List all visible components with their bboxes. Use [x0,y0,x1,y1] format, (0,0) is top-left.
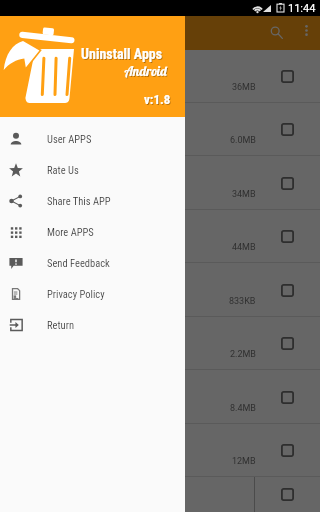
staticText: More APPS [47,226,94,238]
staticText: Uninstall Apps [82,47,164,63]
button[interactable]: User APPS [0,123,185,154]
button[interactable]: Calculator [0,50,320,103]
staticText: Return [47,319,74,331]
staticText: 36MB [232,82,256,93]
button[interactable]: Select app [275,438,299,462]
staticText: Calendar [54,122,102,136]
staticText: Chrome [54,229,97,243]
button[interactable]: Rate Us [0,154,185,185]
staticText: Android [126,64,169,80]
button[interactable]: Contacts [0,317,320,370]
staticText: 2.2MB [230,349,256,360]
button[interactable]: Privacy Policy [0,278,185,309]
button[interactable]: Calendar [0,103,320,156]
button[interactable]: Select app [275,278,299,302]
staticText: 833KB [229,296,256,307]
staticText: 44MB [232,242,256,253]
staticText: 12MB [232,456,256,467]
button[interactable]: Select app [275,117,299,141]
staticText: Share This APP [47,195,111,207]
staticText: Clock [54,283,84,297]
button[interactable]: More APPS [0,216,185,247]
button[interactable]: Chrome [0,210,320,263]
staticText: 34MB [232,189,256,200]
button[interactable]: Select app [275,224,299,248]
button[interactable]: Camera [0,157,320,210]
button[interactable]: Uninstall selected [0,477,254,512]
staticText: v:1.8 [145,93,172,108]
button[interactable]: Search [261,17,292,48]
staticText: 6.0MB [230,135,256,146]
staticText: Privacy Policy [47,288,105,300]
staticText: User APPS [47,133,92,145]
button[interactable]: More options [293,17,320,44]
button[interactable]: Share This APP [0,185,185,216]
staticText: 8.4MB [230,403,256,414]
button[interactable]: Return [0,309,185,340]
button[interactable]: Select app [275,171,299,195]
button[interactable]: Downloads [0,371,320,424]
button[interactable]: Send Feedback [0,247,185,278]
button[interactable]: Clock [0,264,320,317]
staticText: 11:44 [288,2,316,15]
staticText: Android [125,63,168,79]
staticText: Send Feedback [47,257,110,269]
staticText: Calculator [54,69,109,83]
button[interactable]: Drive [0,424,320,477]
staticText: Uninstall Apps [81,46,163,62]
staticText: Rate Us [47,164,79,176]
button[interactable]: Select all [255,477,320,512]
button[interactable]: Select app [275,331,299,355]
staticText: v:1.8 [144,92,171,107]
button[interactable]: Select app [275,64,299,88]
button[interactable]: Select app [275,385,299,409]
